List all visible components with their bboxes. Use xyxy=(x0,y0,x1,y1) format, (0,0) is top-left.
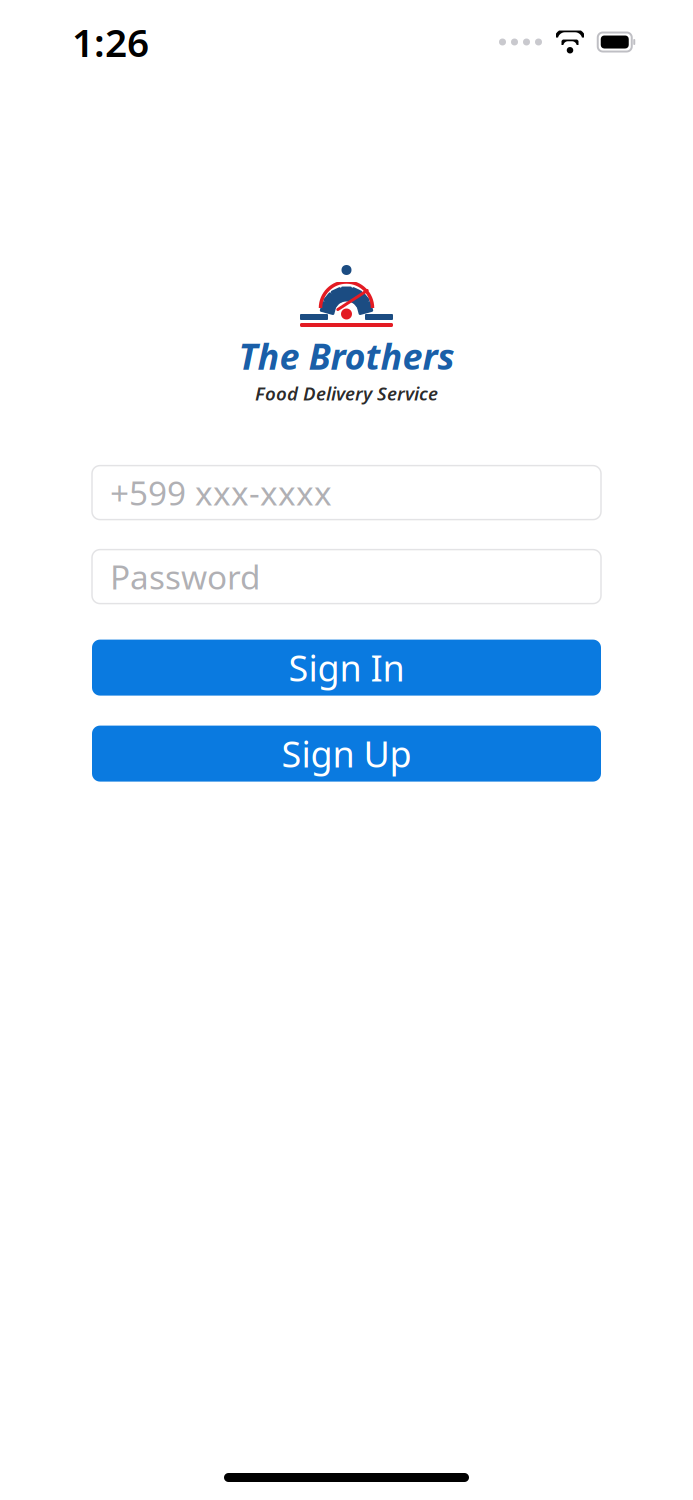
button[interactable]: +599 xxx-xxxx xyxy=(92,466,601,520)
button[interactable]: Sign In xyxy=(92,640,601,696)
staticText: The Brothers xyxy=(238,332,454,380)
staticText: Food Delivery Service xyxy=(255,381,438,406)
button[interactable]: Sign Up xyxy=(92,726,601,782)
staticText: +599 xxx-xxxx xyxy=(110,470,332,515)
staticText: Password xyxy=(110,554,261,599)
staticText: Sign Up xyxy=(281,730,411,777)
staticText: 1:26 xyxy=(72,16,149,68)
button[interactable]: Password xyxy=(92,550,601,604)
staticText: Sign In xyxy=(288,644,404,691)
